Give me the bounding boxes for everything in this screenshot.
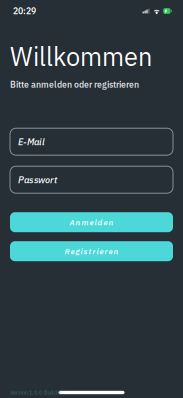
staticText: 20:29 [13,5,36,17]
staticText: Passwort [18,174,57,186]
staticText: Willkommen [10,40,152,73]
staticText: E-Mail [18,136,45,148]
button[interactable]: R e g i s t r i e r e n [10,241,173,261]
staticText: Bitte anmelden oder registrieren [10,79,139,90]
staticText: R e g i s t r i e r e n [64,246,118,256]
staticText: A n m e l d e n [69,217,113,227]
staticText: Version 1.0.0 Build 1 [10,389,61,396]
button[interactable]: E-Mail [10,128,173,155]
button[interactable]: Passwort [10,166,173,193]
button[interactable]: A n m e l d e n [10,212,173,232]
